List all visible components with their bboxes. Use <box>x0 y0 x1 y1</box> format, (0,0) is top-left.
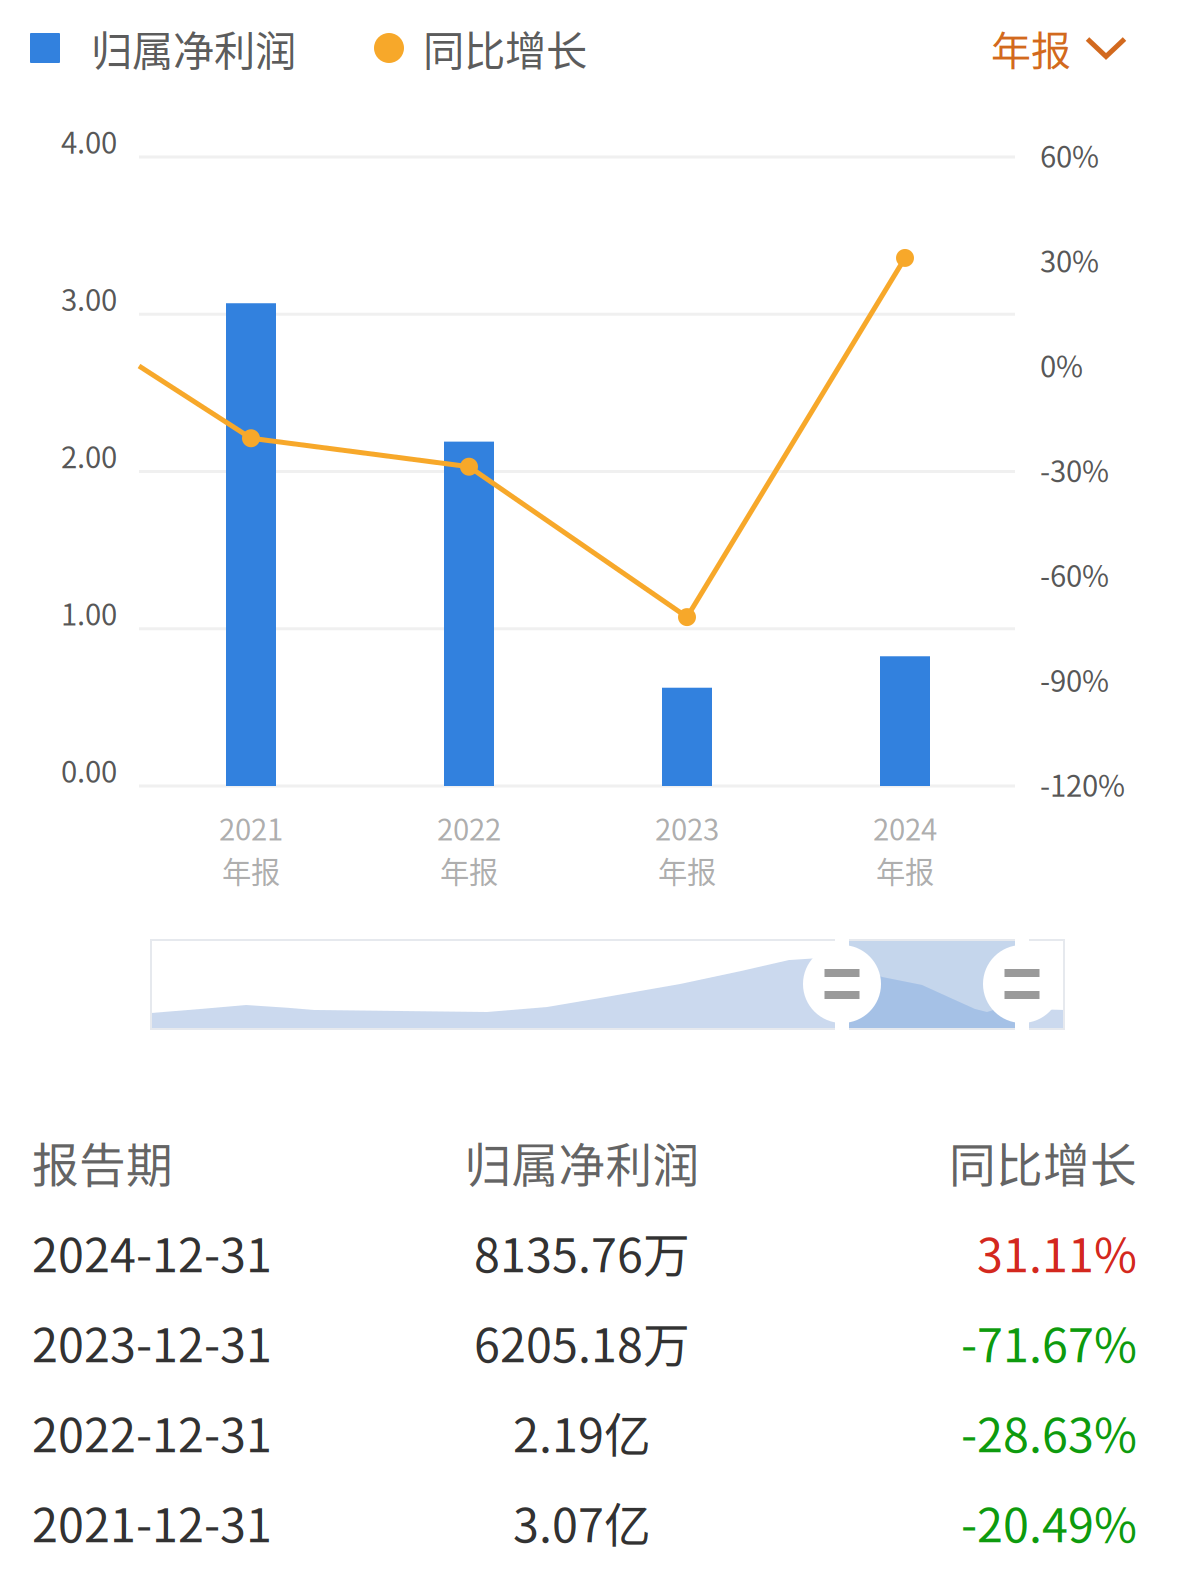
staticText: 60% <box>1040 134 1099 176</box>
staticText: 4.00 <box>61 120 117 162</box>
staticText: -120% <box>1040 763 1125 805</box>
staticText: -60% <box>1040 553 1109 596</box>
staticText: 2024-12-31 <box>32 1218 272 1286</box>
staticText: 报告期 <box>32 1128 173 1196</box>
staticText: -20.49% <box>961 1488 1137 1556</box>
staticText: 2021 <box>219 806 283 849</box>
staticText: 2.00 <box>61 434 117 477</box>
staticText: 年报 <box>440 849 498 891</box>
button[interactable]: Range handle <box>790 932 894 1036</box>
button[interactable]: 年报 <box>991 7 1127 89</box>
staticText: 2.19亿 <box>513 1398 651 1466</box>
button[interactable]: 2022-12-31 <box>0 1387 1179 1477</box>
staticText: 2022 <box>437 806 501 849</box>
staticText: 0.00 <box>61 749 117 791</box>
staticText: 6205.18万 <box>474 1308 690 1376</box>
staticText: 1.00 <box>61 591 117 634</box>
staticText: 8135.76万 <box>474 1218 690 1286</box>
staticText: 同比增长 <box>949 1128 1137 1196</box>
staticText: 年报 <box>658 849 716 891</box>
staticText: 归属净利润 <box>91 18 296 78</box>
button[interactable]: 2024-12-31 <box>0 1207 1179 1297</box>
staticText: 年报 <box>991 19 1071 77</box>
staticText: -28.63% <box>961 1398 1137 1466</box>
staticText: 3.07亿 <box>513 1488 651 1556</box>
staticText: 归属净利润 <box>464 1128 699 1196</box>
staticText: -30% <box>1040 448 1109 491</box>
button[interactable]: 2023-12-31 <box>0 1297 1179 1387</box>
staticText: 30% <box>1040 239 1099 281</box>
staticText: 2024 <box>873 806 937 849</box>
button[interactable]: Range handle <box>970 932 1074 1036</box>
staticText: 2022-12-31 <box>32 1398 272 1466</box>
staticText: 年报 <box>222 849 280 891</box>
staticText: -71.67% <box>961 1308 1137 1376</box>
staticText: 年报 <box>876 849 934 891</box>
staticText: 同比增长 <box>423 18 587 78</box>
staticText: 0% <box>1040 343 1083 386</box>
staticText: 2023 <box>655 806 719 849</box>
button[interactable]: 2021-12-31 <box>0 1477 1179 1567</box>
staticText: 2021-12-31 <box>32 1488 272 1556</box>
staticText: 31.11% <box>977 1218 1137 1286</box>
staticText: -90% <box>1040 658 1109 700</box>
staticText: 2023-12-31 <box>32 1308 272 1376</box>
staticText: 3.00 <box>61 277 117 319</box>
